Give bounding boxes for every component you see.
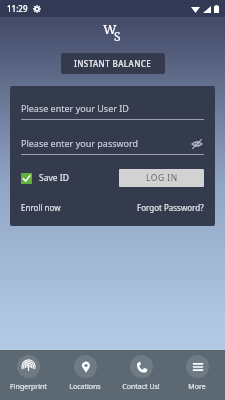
- staticText: Enroll now: [21, 202, 61, 213]
- staticText: Contact Us!: [122, 382, 160, 392]
- staticText: Save ID: [39, 172, 69, 184]
- staticText: More: [188, 382, 206, 392]
- button[interactable]: Locations: [57, 350, 113, 400]
- button[interactable]: Show password: [190, 137, 204, 151]
- button[interactable]: LOG IN: [119, 169, 204, 187]
- staticText: Locations: [69, 382, 101, 392]
- button[interactable]: Forgot Password?: [137, 202, 204, 213]
- button[interactable]: Enroll now: [21, 202, 61, 213]
- staticText: W: [103, 20, 117, 38]
- button[interactable]: INSTANT BALANCE: [61, 53, 165, 74]
- staticText: LOG IN: [146, 172, 178, 184]
- staticText: Please enter your password: [21, 137, 139, 149]
- staticText: Please enter your User ID: [21, 102, 129, 114]
- button[interactable]: Please enter your User ID: [21, 102, 204, 120]
- staticText: S: [114, 28, 121, 44]
- staticText: Forgot Password?: [137, 202, 204, 213]
- button[interactable]: More: [169, 350, 225, 400]
- staticText: 11:29: [7, 3, 28, 14]
- staticText: Fingerprint: [10, 382, 47, 392]
- staticText: INSTANT BALANCE: [74, 58, 152, 69]
- button[interactable]: Contact Us!: [113, 350, 169, 400]
- button[interactable]: Fingerprint: [0, 350, 57, 400]
- button[interactable]: Please enter your password: [21, 137, 204, 155]
- button[interactable]: Save ID: [21, 172, 69, 184]
